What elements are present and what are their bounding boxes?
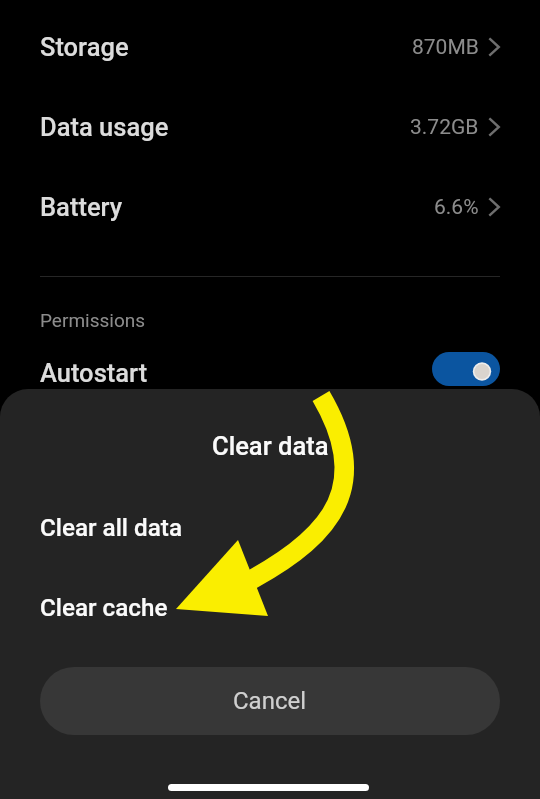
button[interactable]: Autostart — [0, 349, 540, 397]
staticText: 6.6% — [434, 195, 479, 220]
other: Open — [489, 198, 500, 216]
staticText: Permissions — [40, 309, 146, 331]
button[interactable]: Clear all data — [0, 496, 540, 560]
staticText: 870MB — [412, 35, 479, 60]
staticText: Battery — [40, 192, 123, 222]
staticText: 3.72GB — [410, 115, 479, 140]
button[interactable]: Storage — [0, 7, 540, 87]
staticText: Clear data — [212, 431, 329, 461]
staticText: Clear all data — [40, 514, 182, 542]
button[interactable]: Autostart toggle, on — [432, 352, 500, 386]
button[interactable]: Clear cache — [0, 576, 540, 640]
staticText: Cancel — [233, 687, 307, 715]
other: Open — [489, 38, 500, 56]
staticText: Data usage — [40, 112, 169, 142]
button[interactable]: Cancel — [40, 667, 500, 735]
staticText: Storage — [40, 32, 129, 62]
staticText: Autostart — [40, 358, 148, 388]
button[interactable]: Data usage — [0, 87, 540, 167]
button[interactable]: Battery — [0, 167, 540, 247]
other: Open — [489, 118, 500, 136]
staticText: Clear cache — [40, 594, 168, 622]
